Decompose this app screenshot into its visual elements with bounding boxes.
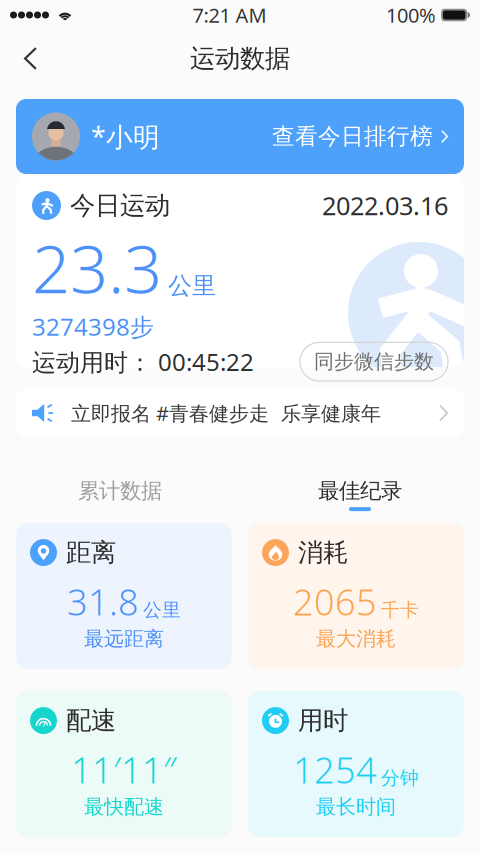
staticText: 运动用时： 00:45:22 [32, 346, 254, 378]
staticText: 最大消耗 [316, 626, 396, 651]
staticText: 最远距离 [84, 626, 164, 651]
staticText: 公里 [143, 598, 181, 621]
staticText: 公里 [168, 271, 216, 301]
button[interactable]: 累计数据 [0, 430, 240, 530]
staticText: 11′11″ [71, 746, 177, 793]
button[interactable]: 配速 [16, 691, 232, 837]
staticText: 立即报名 #青春健步走 乐享健康年 [71, 400, 381, 426]
staticText: 3274398步 [32, 310, 154, 342]
staticText: 7:21 AM [192, 2, 266, 28]
button[interactable]: 用时 [248, 691, 464, 837]
staticText: 消耗 [298, 537, 348, 568]
staticText: 配速 [66, 705, 116, 736]
staticText: 分钟 [381, 766, 419, 789]
button[interactable]: 距离 [16, 523, 232, 669]
button[interactable]: Back [0, 36, 57, 81]
button[interactable]: 同步微信步数 [300, 342, 448, 381]
button[interactable]: 查看今日排行榜 [272, 123, 448, 150]
staticText: 2065 [293, 578, 377, 625]
staticText: 31.8 [67, 578, 139, 625]
staticText: 同步微信步数 [314, 349, 434, 374]
staticText: 千卡 [381, 598, 419, 621]
staticText: 最长时间 [316, 794, 396, 819]
staticText: 23.3 [32, 223, 162, 311]
staticText: 查看今日排行榜 [272, 123, 433, 150]
staticText: *小明 [91, 119, 160, 154]
staticText: 2022.03.16 [322, 189, 448, 222]
staticText: 1254 [293, 746, 377, 793]
staticText: 累计数据 [78, 478, 162, 504]
staticText: 最佳纪录 [318, 478, 402, 504]
staticText: 运动数据 [190, 43, 290, 74]
button[interactable]: 最佳纪录 [240, 430, 480, 530]
staticText: 最快配速 [84, 794, 164, 819]
button[interactable]: 立即报名 #青春健步走 乐享健康年 [16, 389, 464, 437]
staticText: 用时 [298, 705, 348, 736]
button[interactable]: 消耗 [248, 523, 464, 669]
staticText: 距离 [66, 537, 116, 568]
staticText: 100% [386, 2, 436, 28]
staticText: 今日运动 [70, 190, 170, 221]
